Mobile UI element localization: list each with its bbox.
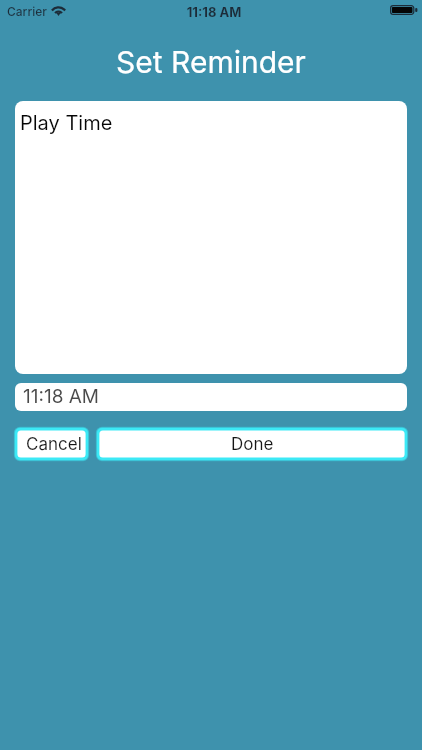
other: Wi-Fi signal	[50, 4, 67, 16]
staticText: Cancel	[26, 434, 82, 455]
button[interactable]: Cancel	[15, 428, 88, 460]
staticText: Carrier	[7, 4, 47, 19]
staticText: Play Time	[20, 111, 113, 135]
button[interactable]: Done	[97, 428, 407, 460]
staticText: Done	[231, 434, 274, 455]
other: Battery full	[390, 5, 417, 15]
staticText: Set Reminder	[0, 44, 422, 80]
button[interactable]: 11:18 AM	[15, 383, 407, 411]
staticText: 11:18 AM	[3, 4, 422, 20]
staticText: 11:18 AM	[23, 385, 100, 408]
button[interactable]: Play Time	[15, 101, 407, 374]
